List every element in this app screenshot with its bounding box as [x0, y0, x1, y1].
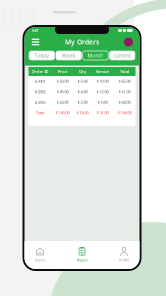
- staticText: My Orders: [65, 38, 99, 46]
- button[interactable]: Week: [56, 51, 81, 60]
- button[interactable]: Home: [23, 244, 57, 266]
- staticText: Service: [96, 69, 109, 74]
- staticText: $ 45.00: [56, 89, 68, 94]
- staticText: $ 14.00: [76, 110, 88, 115]
- button[interactable]: Report: [65, 244, 99, 266]
- staticText: $ 12.00: [96, 89, 108, 94]
- staticText: Week: [62, 52, 76, 59]
- button[interactable]: Menu: [29, 36, 42, 48]
- staticText: $ 9.00: [97, 100, 107, 105]
- staticText: $ 10.00: [96, 79, 108, 84]
- button[interactable]: Current: [109, 51, 135, 60]
- staticText: Home: [34, 257, 45, 262]
- staticText: Report: [76, 257, 87, 262]
- button[interactable]: Today: [29, 51, 54, 60]
- staticText: $ 54.00: [56, 100, 68, 105]
- staticText: $ 65.00: [118, 79, 130, 84]
- staticText: Month: [87, 52, 103, 59]
- staticText: Total: [36, 110, 44, 115]
- staticText: $ 68.00: [118, 100, 130, 105]
- staticText: Profile: [118, 257, 129, 262]
- button[interactable]: Month: [83, 51, 108, 60]
- staticText: $ 61.00: [118, 89, 130, 94]
- button[interactable]: Account: [122, 36, 135, 48]
- staticText: $ 50.00: [56, 79, 68, 84]
- staticText: Price: [58, 69, 67, 74]
- staticText: Total: [120, 69, 129, 74]
- staticText: #2003: [34, 100, 45, 105]
- staticText: $ 194.00: [117, 110, 131, 115]
- button[interactable]: Profile: [107, 244, 141, 266]
- staticText: $ 5.00: [77, 100, 87, 105]
- staticText: Current: [113, 52, 131, 59]
- staticText: Qty: [79, 69, 86, 74]
- staticText: $ 31.00: [96, 110, 108, 115]
- staticText: $ 5.00: [77, 79, 87, 84]
- staticText: Order ID: [31, 69, 48, 74]
- staticText: 9:41: [31, 28, 38, 33]
- staticText: #2002: [34, 89, 45, 94]
- staticText: $ 4.00: [77, 89, 87, 94]
- staticText: Today: [34, 52, 49, 59]
- staticText: $ 149.00: [55, 110, 69, 115]
- staticText: #2001: [34, 79, 45, 84]
